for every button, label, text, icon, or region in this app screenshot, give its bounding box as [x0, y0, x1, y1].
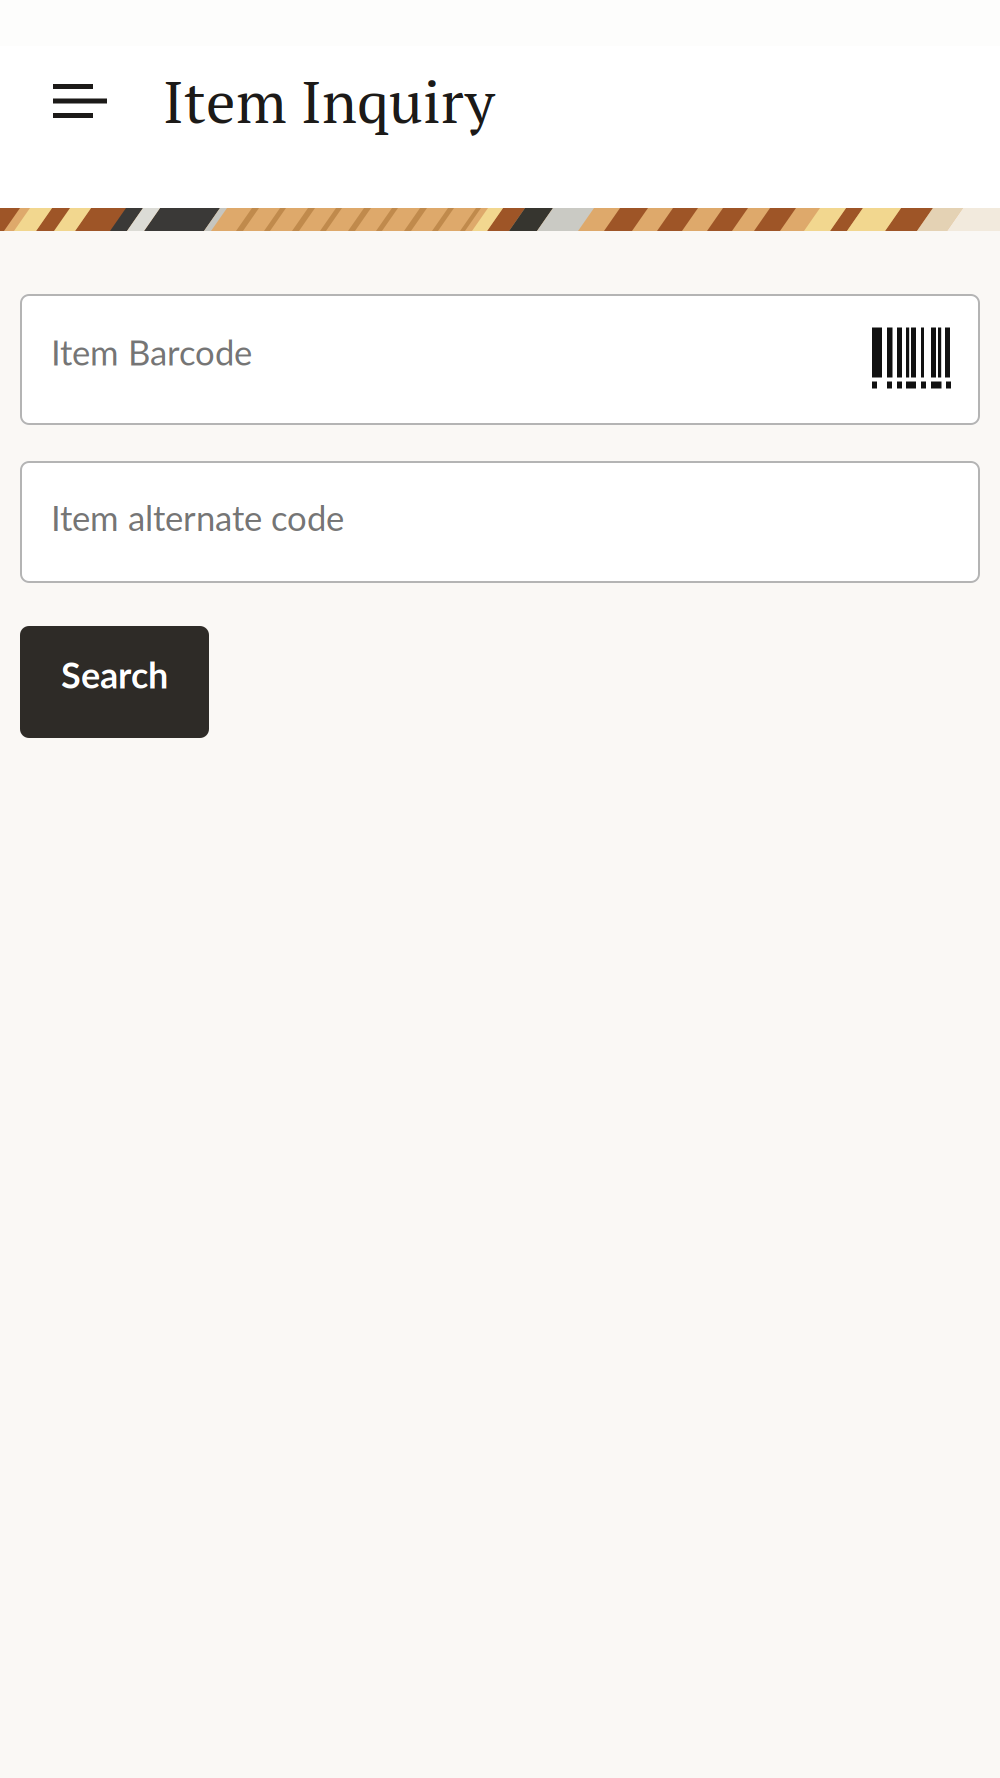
staticText: Item Barcode [51, 331, 252, 373]
button[interactable]: Search [20, 626, 209, 738]
staticText: Item Inquiry [163, 62, 495, 140]
button[interactable]: Menu [0, 46, 163, 208]
staticText: Search [61, 653, 168, 696]
staticText: Item alternate code [51, 497, 344, 538]
